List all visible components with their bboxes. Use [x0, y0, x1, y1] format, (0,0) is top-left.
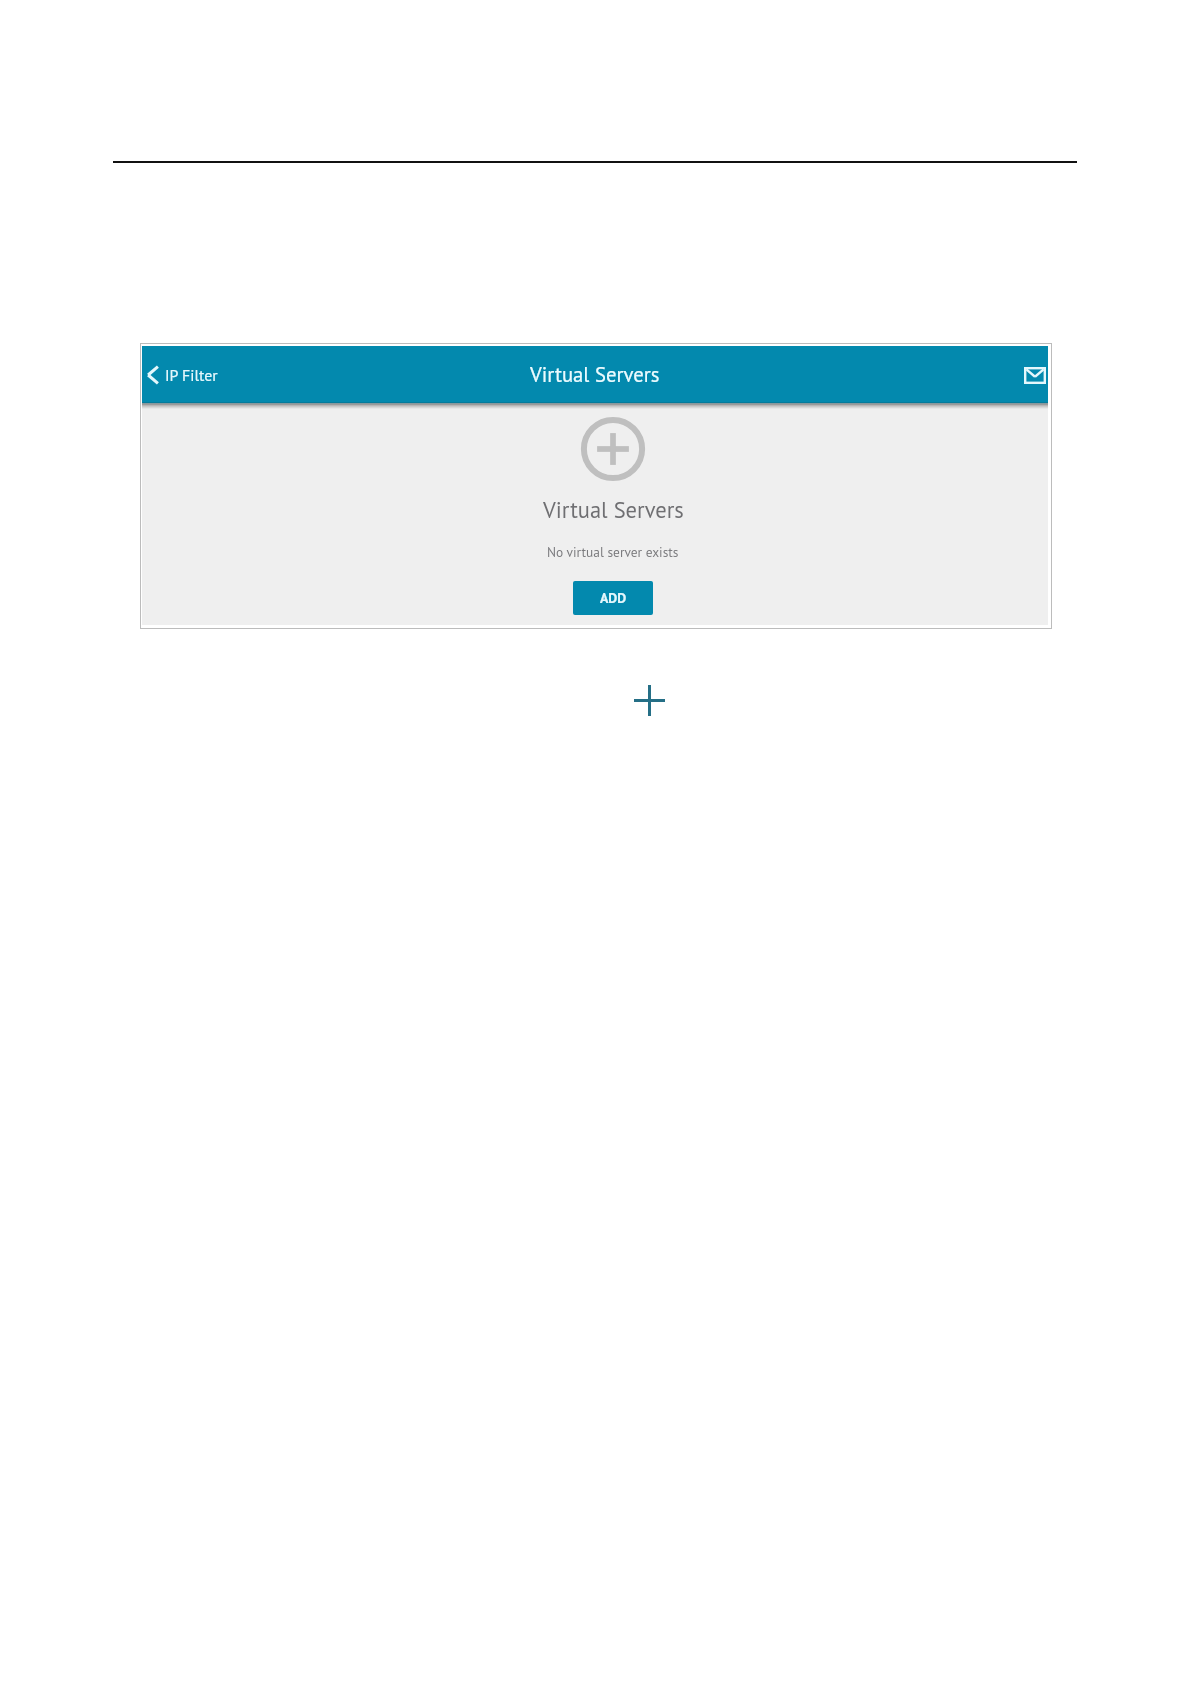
staticText: IP Filter [165, 365, 218, 385]
staticText: Virtual Servers [530, 361, 660, 388]
staticText: No virtual server exists [547, 543, 679, 560]
button[interactable]: IP Filter [142, 359, 225, 391]
button[interactable]: ADD [573, 581, 653, 615]
staticText: ADD [600, 589, 627, 607]
staticText: Virtual Servers [543, 495, 684, 524]
button[interactable]: Add virtual server [579, 415, 647, 483]
button[interactable]: Add [634, 685, 665, 716]
button[interactable]: Messages [1018, 360, 1048, 389]
